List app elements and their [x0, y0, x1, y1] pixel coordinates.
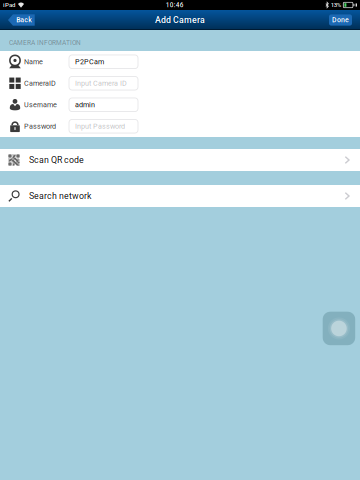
staticText: P2PCam: [75, 57, 104, 66]
staticText: Done: [332, 16, 349, 24]
button[interactable]: Done: [329, 14, 360, 26]
staticText: 13%: [331, 1, 342, 9]
staticText: admin: [75, 100, 95, 109]
button[interactable]: AssistiveTouch: [323, 312, 355, 345]
staticText: iPad: [3, 1, 15, 9]
staticText: 10:46: [166, 1, 184, 9]
staticText: Back: [16, 16, 32, 24]
staticText: Add Camera: [155, 15, 205, 25]
button[interactable]: Scan QR code: [0, 149, 360, 171]
staticText: Scan QR code: [29, 155, 84, 165]
button[interactable]: Back: [0, 14, 35, 26]
staticText: Name: [24, 57, 43, 66]
staticText: Password: [24, 122, 56, 130]
staticText: Username: [24, 100, 57, 109]
button[interactable]: Search network: [0, 185, 360, 207]
staticText: Search network: [29, 191, 91, 201]
staticText: CAMERA INFORMATION: [9, 39, 81, 46]
staticText: Input Password: [75, 122, 125, 130]
staticText: Input Camera ID: [75, 79, 127, 87]
staticText: CameraID: [24, 79, 56, 87]
